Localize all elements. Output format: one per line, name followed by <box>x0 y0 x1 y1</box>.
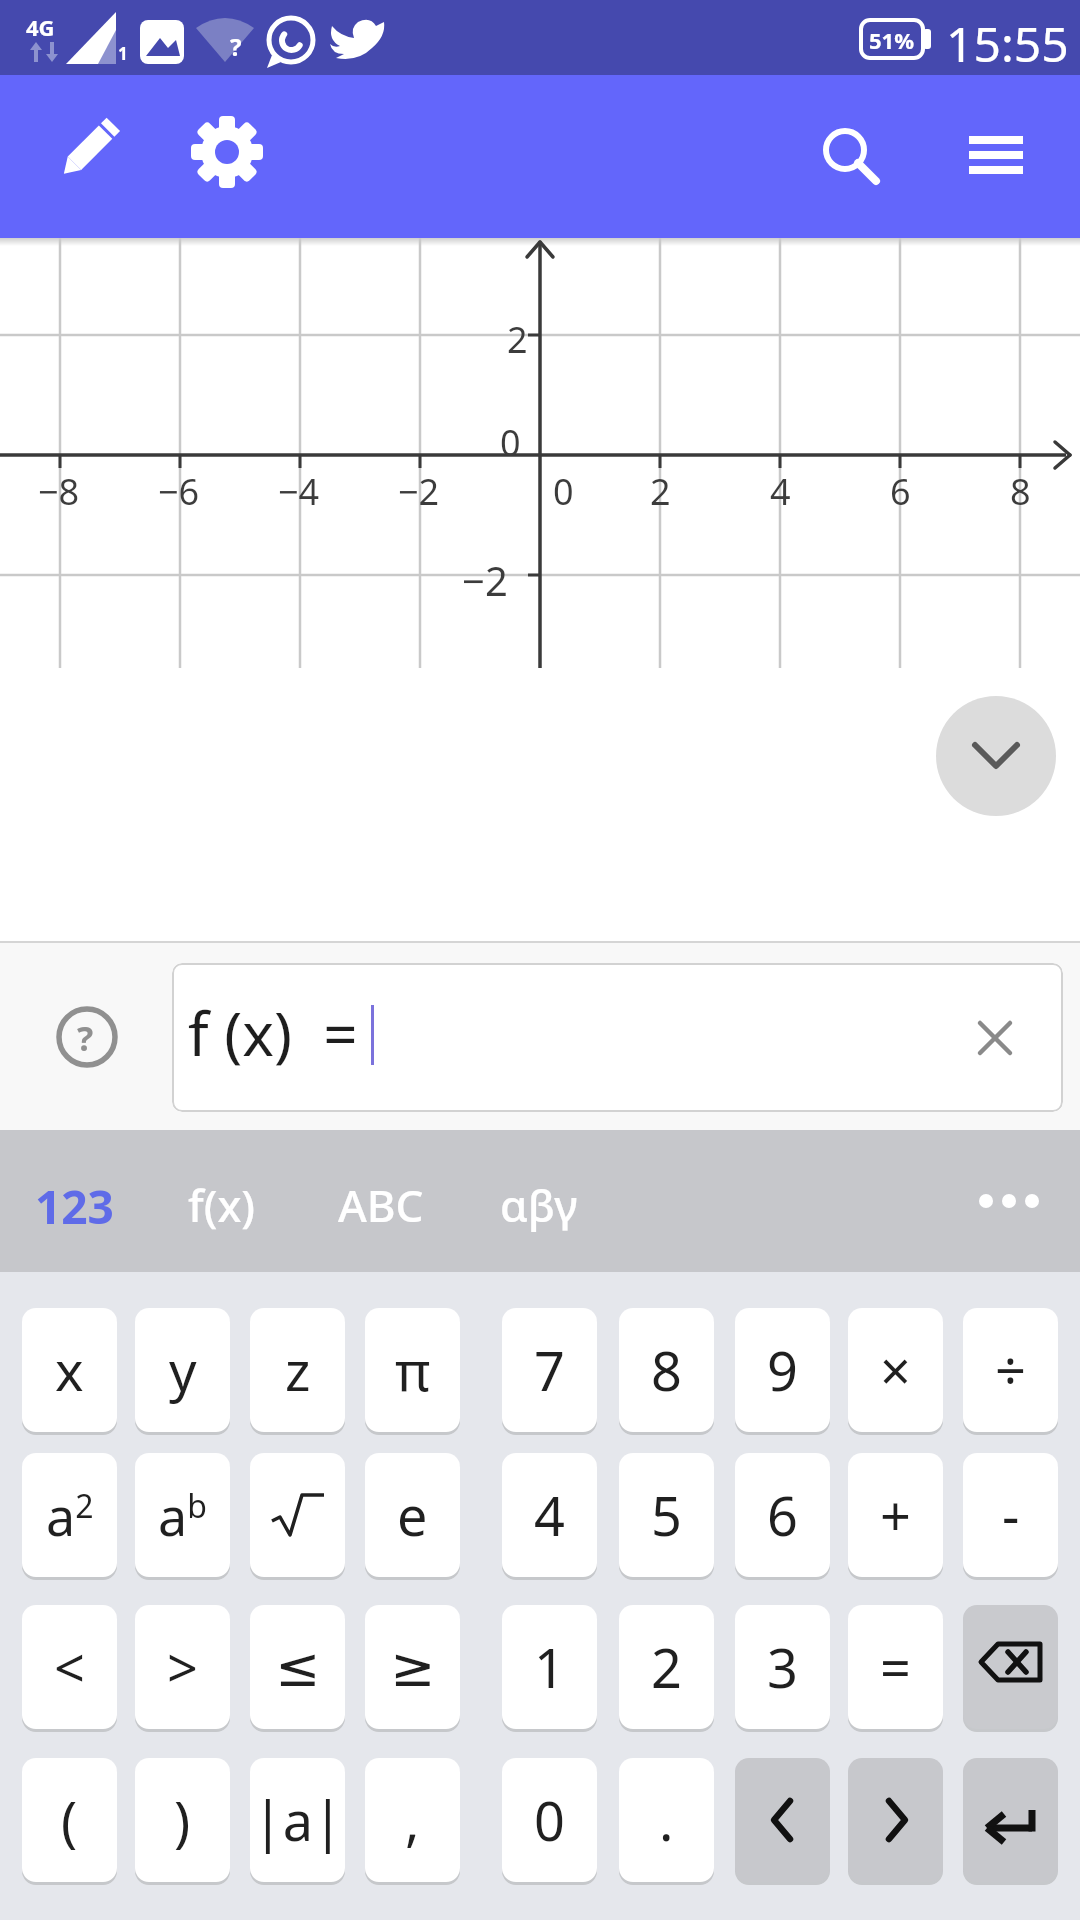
staticText: e <box>397 1478 428 1552</box>
staticText: a2 <box>46 1480 94 1551</box>
staticText: ≤ <box>275 1636 321 1699</box>
staticText: −6 <box>158 467 200 516</box>
staticText: −8 <box>38 467 80 516</box>
staticText: 4G <box>26 12 55 42</box>
staticText: 2 <box>650 467 671 516</box>
staticText: 9 <box>767 1333 798 1407</box>
staticText: 0 <box>500 418 521 467</box>
staticText: 4 <box>770 467 791 516</box>
staticText: = <box>880 1630 911 1704</box>
staticText: f (x) = <box>188 992 358 1074</box>
staticText: 7 <box>534 1333 565 1407</box>
staticText: ab <box>158 1480 207 1551</box>
staticText: > <box>167 1630 198 1704</box>
staticText: 8 <box>651 1333 682 1407</box>
staticText: 2 <box>507 315 528 364</box>
staticText: αβγ <box>500 1175 578 1235</box>
staticText: 0 <box>553 467 574 516</box>
staticText: - <box>1002 1478 1020 1552</box>
staticText: 123 <box>35 1175 114 1238</box>
staticText: ≥ <box>390 1636 436 1699</box>
staticText: |a| <box>253 1783 343 1857</box>
staticText: ABC <box>338 1175 424 1235</box>
staticText: 15:55 <box>946 11 1069 76</box>
staticText: × <box>880 1333 911 1407</box>
staticText: z <box>285 1333 311 1407</box>
staticText: < <box>54 1630 85 1704</box>
staticText: f(x) <box>188 1175 256 1235</box>
staticText: 51% <box>869 25 915 55</box>
staticText: 8 <box>1010 467 1031 516</box>
staticText: , <box>405 1783 420 1857</box>
staticText: −4 <box>278 467 320 516</box>
staticText: + <box>880 1478 911 1552</box>
staticText: ? <box>77 1015 94 1061</box>
staticText: 4 <box>534 1478 565 1552</box>
staticText: 6 <box>890 467 911 516</box>
staticText: x <box>55 1333 84 1407</box>
staticText: ÷ <box>995 1333 1026 1407</box>
staticText: 3 <box>767 1630 798 1704</box>
staticText: −2 <box>398 467 440 516</box>
staticText: . <box>659 1783 674 1857</box>
staticText: ( <box>61 1783 78 1857</box>
staticText: π <box>395 1333 431 1407</box>
staticText: 0 <box>534 1783 565 1857</box>
staticText: 2 <box>651 1630 682 1704</box>
staticText: ) <box>174 1783 191 1857</box>
staticText: −2 <box>462 553 508 607</box>
staticText: 6 <box>767 1478 798 1552</box>
staticText: 1 <box>534 1630 565 1704</box>
staticText: y <box>169 1333 197 1407</box>
staticText: 1 <box>118 42 128 65</box>
staticText: 5 <box>651 1478 682 1552</box>
staticText: ? <box>230 30 242 63</box>
